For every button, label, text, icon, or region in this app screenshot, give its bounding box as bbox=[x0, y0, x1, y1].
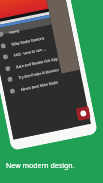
button[interactable]: Home bbox=[0, 18, 52, 41]
button[interactable]: About Best Mike Radio bbox=[3, 74, 64, 98]
staticText: Home bbox=[9, 28, 20, 35]
staticText: Mike Radio Stations bbox=[11, 35, 45, 47]
button[interactable]: Record bbox=[76, 106, 91, 121]
staticText: FAQ - How to use ... bbox=[13, 46, 47, 58]
button[interactable]: Mike Radio Stations bbox=[0, 29, 55, 53]
button[interactable]: FAQ - How to use ... bbox=[0, 40, 57, 64]
staticText: New modern design. bbox=[6, 161, 75, 171]
staticText: Try Site Probe & Monitor bbox=[18, 67, 60, 80]
staticText: About Best Mike Radio bbox=[20, 79, 59, 92]
staticText: Rate and Review this App bbox=[16, 56, 59, 69]
button[interactable]: Rate and Review this App bbox=[0, 52, 59, 76]
button[interactable]: Try Site Probe & Monitor bbox=[0, 63, 62, 86]
